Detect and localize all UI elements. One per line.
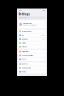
button[interactable]: Bluetooth <box>18 37 46 41</box>
button[interactable]: Wi-Fi <box>18 33 46 37</box>
button[interactable]: Airplane Mode <box>18 30 46 33</box>
staticText: Search <box>20 17 26 19</box>
staticText: Wi-Fi <box>22 34 24 36</box>
staticText: Cellular <box>22 42 27 44</box>
staticText: Notifications <box>22 51 30 52</box>
staticText: Display <box>22 71 27 73</box>
button[interactable]: Focus <box>18 57 46 61</box>
staticText: Apple Account, iCloud <box>23 24 37 26</box>
staticText: Bluetooth <box>22 38 28 40</box>
staticText: Alex Morgan <box>23 22 32 24</box>
button[interactable]: Hotspot <box>18 45 46 49</box>
staticText: Focus <box>22 58 27 60</box>
staticText: Hotspot <box>22 46 27 48</box>
staticText: 9:41 <box>19 10 22 11</box>
button[interactable]: Display <box>18 70 46 74</box>
button[interactable]: General <box>18 62 46 66</box>
button[interactable]: Control Center <box>18 66 46 70</box>
staticText: Sounds & Haptics <box>22 54 34 56</box>
staticText: Home <box>40 34 44 36</box>
staticText: General <box>22 63 28 65</box>
staticText: Control Center <box>22 67 32 69</box>
staticText: On <box>42 38 44 40</box>
button[interactable]: Sounds & Haptics <box>18 54 46 57</box>
button[interactable]: Cellular <box>18 41 46 45</box>
button[interactable]: Alex Morgan <box>18 20 46 28</box>
button[interactable]: Notifications <box>18 50 46 53</box>
staticText: Airplane Mode <box>22 31 32 32</box>
staticText: Settings <box>18 12 29 16</box>
